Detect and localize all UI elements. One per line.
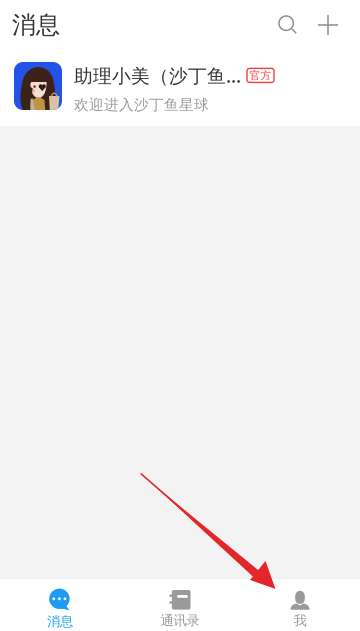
button[interactable]: Add [308,7,348,43]
staticText: 消息 [47,613,73,630]
staticText: 欢迎进入沙丁鱼星球 [74,96,209,114]
staticText: 官方 [249,69,271,82]
button[interactable]: 通讯录 [120,579,240,631]
button[interactable]: 助理小美（沙丁鱼... [0,50,360,126]
staticText: 我 [293,612,306,629]
staticText: 通讯录 [160,612,199,629]
button[interactable]: Search [268,7,308,43]
button[interactable]: 我 [240,579,360,631]
button[interactable]: 消息 [0,579,120,631]
staticText: 消息 [12,10,60,40]
staticText: 助理小美（沙丁鱼... [74,63,241,88]
